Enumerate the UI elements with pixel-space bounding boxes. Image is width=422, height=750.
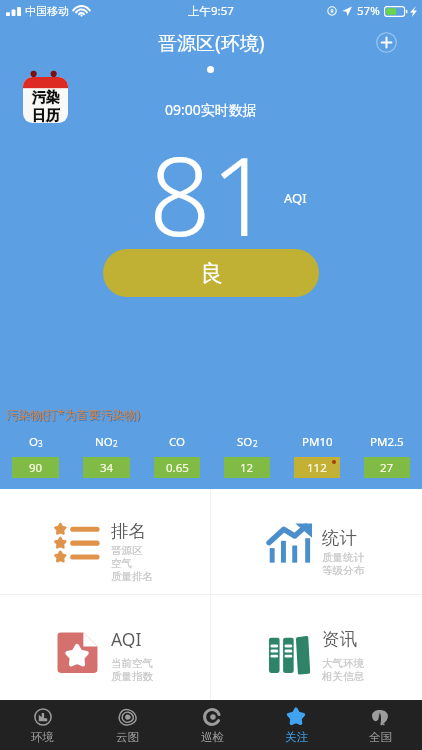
staticText: 云图 <box>116 730 139 744</box>
button[interactable]: 全国 <box>338 700 422 750</box>
button[interactable]: NO <box>71 434 142 478</box>
staticText: 统计 <box>322 527 357 548</box>
staticText: 资讯 <box>322 628 357 649</box>
staticText: 2 <box>113 438 118 449</box>
staticText: 当前空气 <box>111 657 153 670</box>
staticText: CO <box>169 434 186 450</box>
staticText: 日历 <box>32 107 60 123</box>
button[interactable]: SO <box>212 434 282 478</box>
staticText: 污染 <box>32 89 60 107</box>
staticText: AQI <box>111 627 142 648</box>
button[interactable]: PM10 <box>282 434 352 478</box>
staticText: 上午9:57 <box>188 3 234 19</box>
staticText: 90 <box>29 460 43 476</box>
staticText: 大气环境 <box>322 657 364 670</box>
button[interactable]: O <box>0 434 71 478</box>
staticText: 81 <box>149 121 273 268</box>
staticText: 27 <box>380 460 394 476</box>
staticText: 污染物(打*为首要污染物) <box>6 406 140 422</box>
staticText: 09:00实时数据 <box>165 100 257 119</box>
button[interactable]: 统计 <box>211 489 422 594</box>
button[interactable]: 关注 <box>254 700 338 750</box>
staticText: PM2.5 <box>370 434 404 450</box>
button[interactable]: PM2.5 <box>352 434 422 478</box>
staticText: 57% <box>357 3 380 19</box>
staticText: 0.65 <box>166 460 189 476</box>
staticText: O <box>29 434 38 450</box>
staticText: 质量指数 <box>111 670 153 683</box>
staticText: 关注 <box>285 730 308 744</box>
staticText: 中国移动 <box>25 4 69 18</box>
staticText: NO <box>95 434 113 450</box>
staticText: 晋源区 <box>111 544 143 557</box>
staticText: 34 <box>100 460 114 476</box>
staticText: 良 <box>200 259 223 288</box>
staticText: PM10 <box>302 434 333 450</box>
button[interactable]: 环境 <box>0 700 85 750</box>
staticText: 空气 <box>111 557 132 570</box>
staticText: 全国 <box>369 730 392 744</box>
button[interactable]: 巡检 <box>170 700 254 750</box>
staticText: 质量统计 <box>322 551 364 564</box>
button[interactable]: CO <box>142 434 212 478</box>
button[interactable]: Add city <box>373 29 399 55</box>
staticText: SO <box>237 434 253 450</box>
staticText: 2 <box>253 438 258 449</box>
staticText: 112 <box>307 460 327 476</box>
button[interactable]: 云图 <box>85 700 170 750</box>
staticText: 晋源区(环境) <box>158 30 265 56</box>
staticText: 3 <box>38 438 43 449</box>
staticText: 巡检 <box>201 730 224 744</box>
button[interactable]: 排名 <box>0 489 210 594</box>
staticText: 环境 <box>31 730 54 744</box>
staticText: 等级分布 <box>322 564 364 577</box>
button[interactable]: 良 <box>103 249 319 297</box>
staticText: AQI <box>284 189 307 207</box>
staticText: 污染物(打*为首要污染物) <box>7 407 141 423</box>
button[interactable]: AQI <box>0 595 210 700</box>
staticText: 12 <box>240 460 254 476</box>
staticText: 相关信息 <box>322 670 364 683</box>
staticText: 质量排名 <box>111 570 153 583</box>
staticText: 排名 <box>111 520 146 541</box>
button[interactable]: Pollution calendar <box>23 71 68 123</box>
button[interactable]: 资讯 <box>211 595 422 700</box>
